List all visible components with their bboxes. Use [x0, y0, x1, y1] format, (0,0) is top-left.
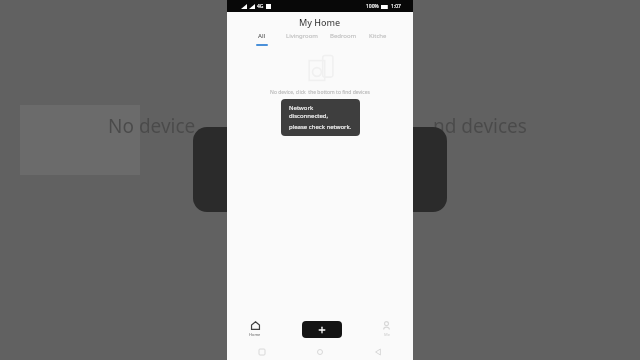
button[interactable]: Add device: [302, 321, 342, 338]
staticText: Network disconnected,: [289, 104, 352, 120]
staticText: please check network.: [289, 123, 352, 131]
staticText: No device: [108, 113, 196, 139]
button[interactable]: Home: [245, 317, 265, 341]
staticText: 4G: [257, 3, 264, 10]
staticText: 1:07: [391, 3, 401, 10]
staticText: Kitche: [369, 32, 387, 40]
staticText: Bedroom: [330, 32, 357, 40]
button[interactable]: Livingroom: [285, 32, 319, 44]
staticText: Livingroom: [286, 32, 318, 40]
staticText: No device, click the bottom to find devi…: [270, 89, 370, 96]
staticText: nd devices: [433, 113, 527, 139]
button[interactable]: Home: [313, 345, 327, 359]
staticText: Me: [384, 332, 390, 337]
button[interactable]: Kitche: [368, 32, 388, 44]
staticText: My Home: [299, 16, 341, 28]
button[interactable]: Back: [371, 345, 385, 359]
button[interactable]: Me: [378, 317, 395, 341]
button[interactable]: All: [255, 32, 269, 46]
staticText: Home: [249, 332, 261, 337]
button[interactable]: Bedroom: [329, 32, 358, 44]
staticText: All: [258, 32, 266, 40]
button[interactable]: Recents: [255, 345, 269, 359]
staticText: 100%: [366, 3, 379, 10]
